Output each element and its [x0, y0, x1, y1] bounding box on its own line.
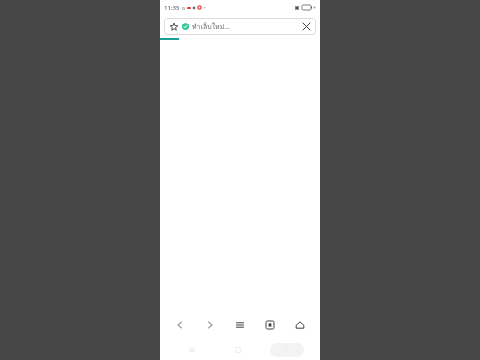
staticText: ทำเล็บใหม่... — [192, 21, 230, 32]
button[interactable]: Back — [167, 311, 193, 339]
button[interactable]: Back — [270, 343, 304, 357]
button[interactable]: Bookmark — [164, 18, 316, 35]
button[interactable]: Forward — [197, 311, 223, 339]
button[interactable]: Home — [287, 311, 313, 339]
button[interactable]: Tabs — [257, 311, 283, 339]
button[interactable]: Bookmark — [168, 21, 179, 32]
staticText: ถ — [182, 4, 186, 12]
button[interactable]: Stop loading — [299, 19, 314, 34]
button[interactable]: Menu — [227, 311, 253, 339]
staticText: 11:35 — [164, 4, 180, 12]
